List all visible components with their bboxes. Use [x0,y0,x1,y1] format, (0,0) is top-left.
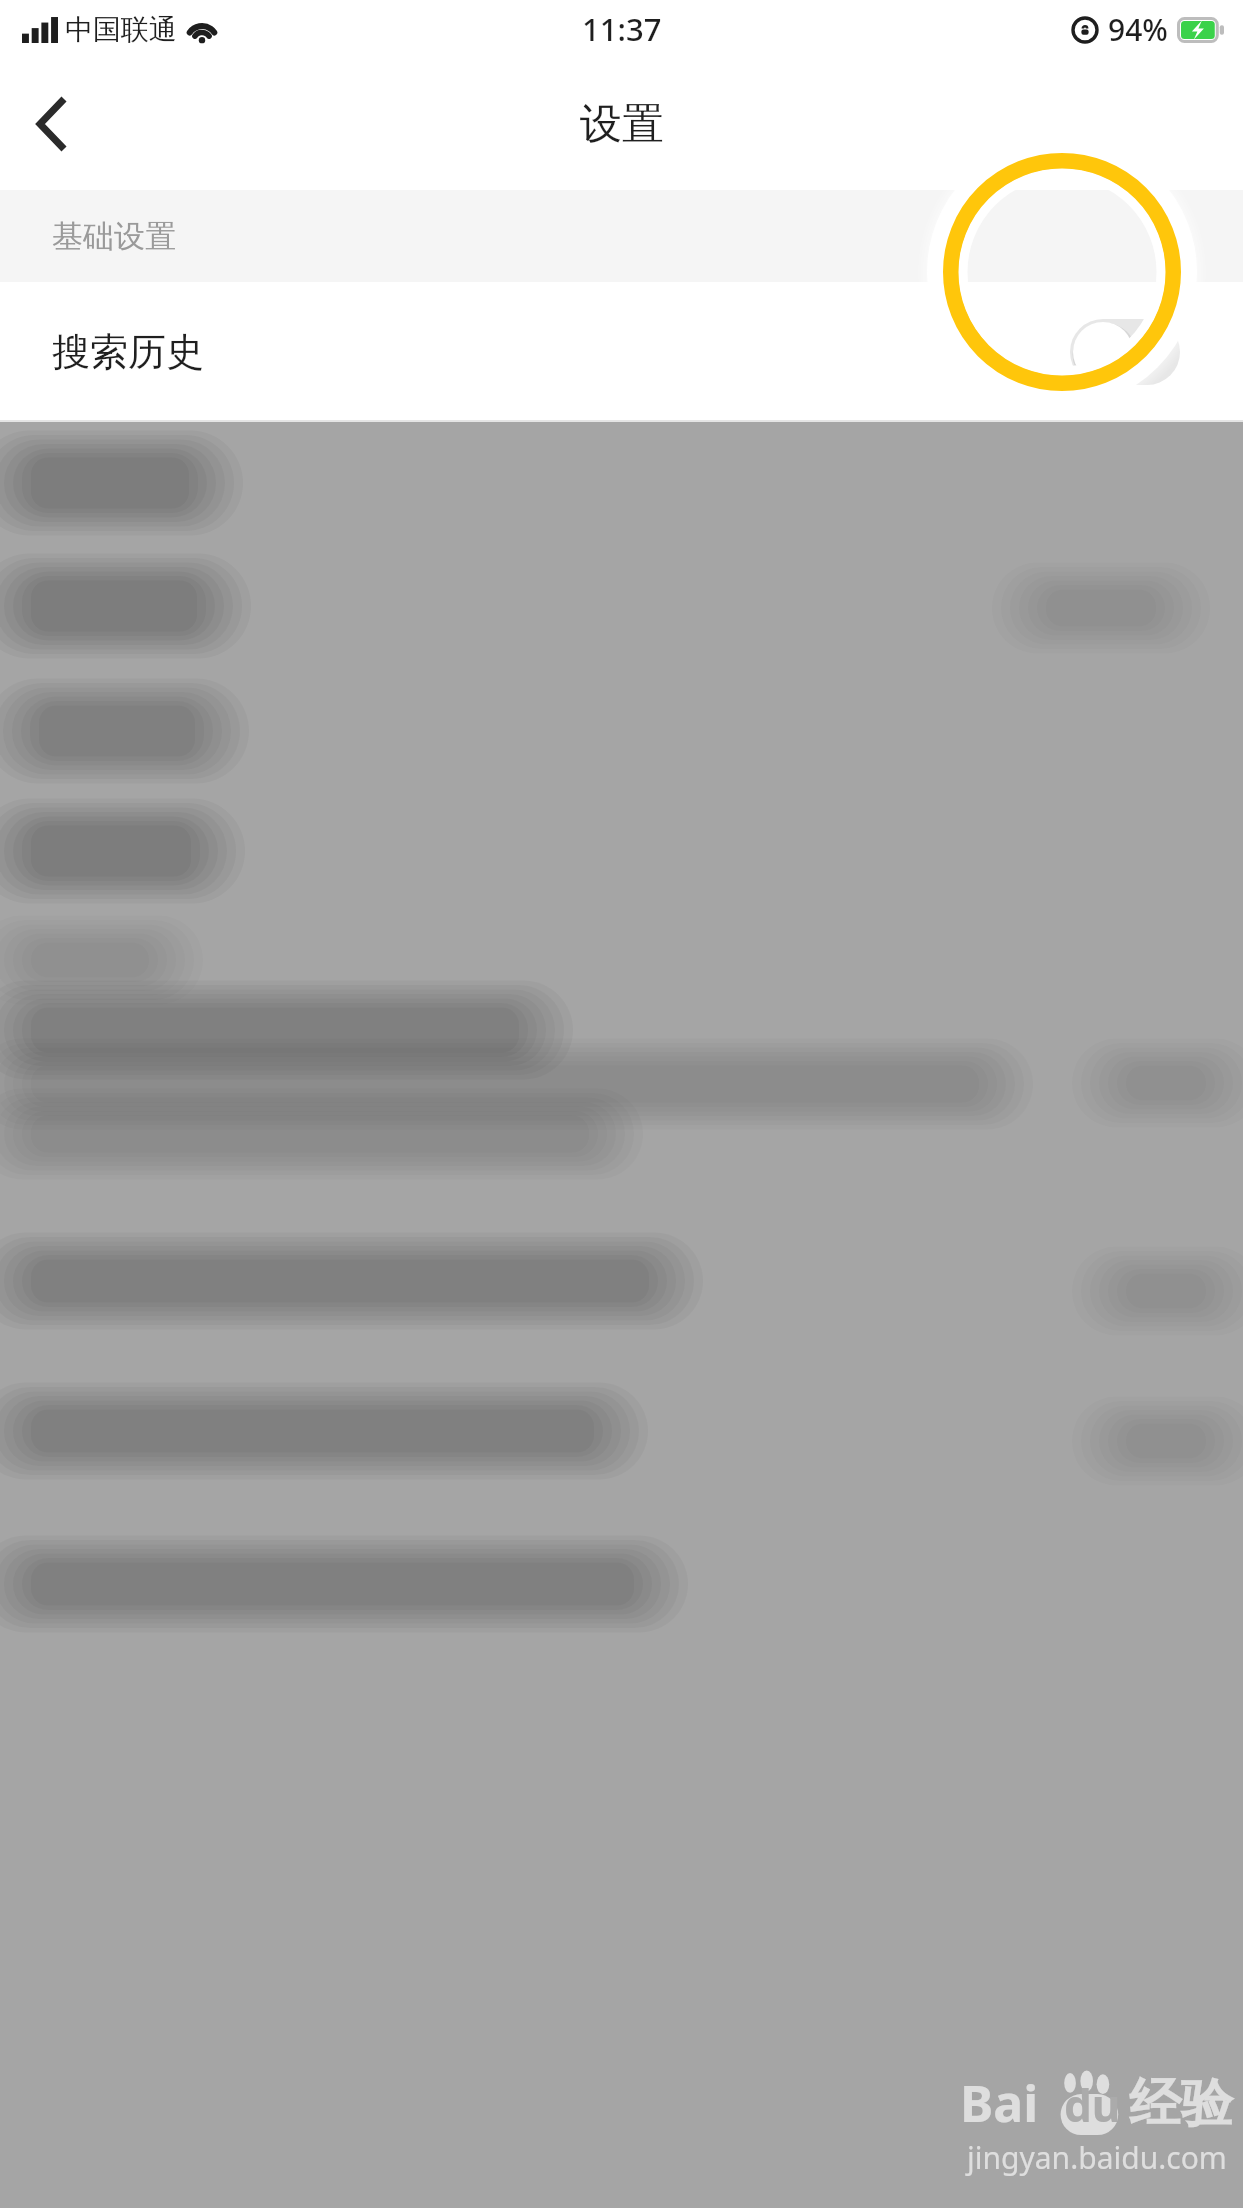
staticText: 11:37 [582,8,662,50]
staticText: 中国联通 [65,12,177,47]
staticText: 搜索历史 [52,328,204,376]
staticText: 经验 [1129,2071,1233,2137]
button[interactable]: 搜索历史 [0,282,1243,422]
staticText: 94% [1108,9,1168,50]
staticText: Bai [960,2069,1039,2137]
staticText: 基础设置 [52,217,176,256]
button[interactable]: Search history toggle [1070,319,1180,385]
staticText: du [1064,2075,1121,2135]
staticText: jingyan.baidu.com [967,2137,1227,2178]
button[interactable]: Back [0,72,104,176]
staticText: 设置 [580,98,664,151]
